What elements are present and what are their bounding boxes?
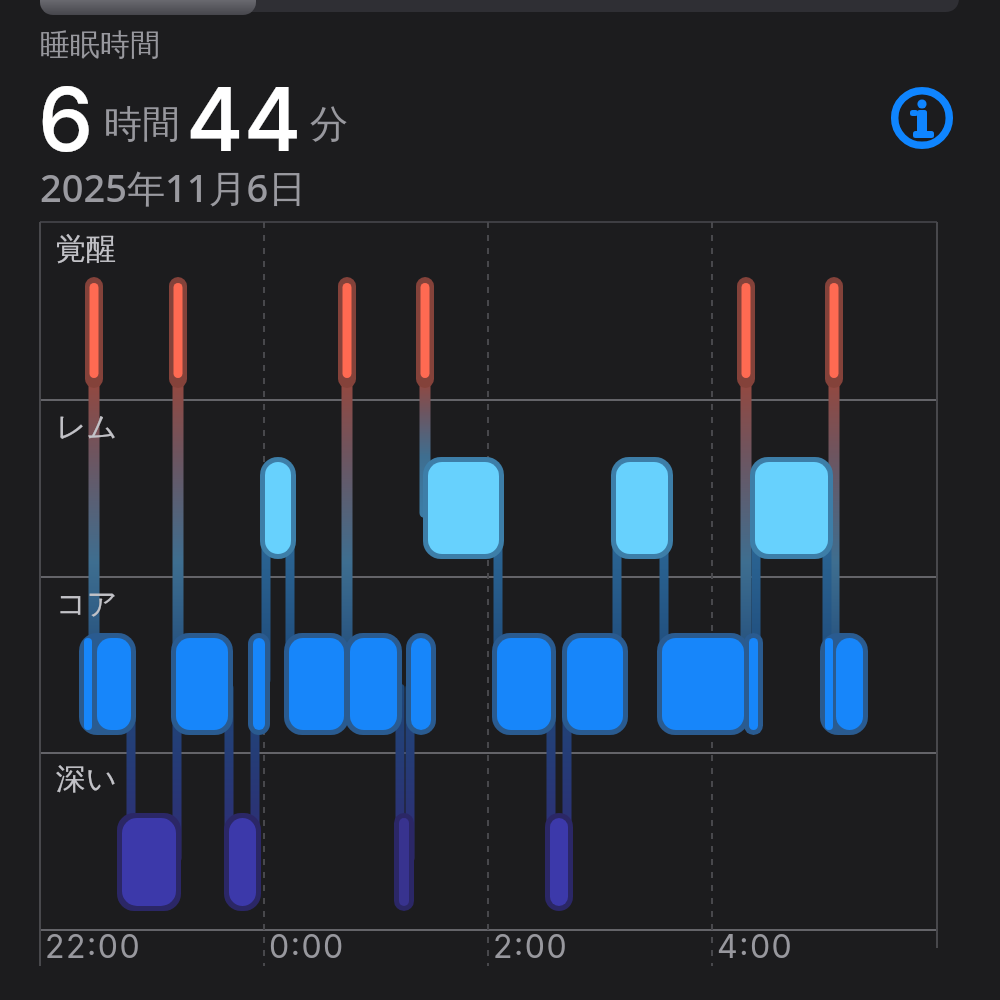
button[interactable] (40, 0, 256, 15)
staticText: 時間 (104, 100, 180, 148)
staticText: 深い (56, 760, 117, 798)
staticText: コア (56, 585, 118, 623)
staticText: 4:00 (717, 927, 794, 966)
staticText: 44 (186, 66, 302, 172)
staticText: レム (56, 408, 118, 446)
staticText: 睡眠時間 (40, 26, 160, 64)
staticText: 覚醒 (56, 230, 116, 268)
staticText: 分 (310, 100, 348, 148)
staticText: 22:00 (45, 927, 142, 966)
staticText: 0:00 (269, 927, 345, 966)
staticText: 6 (38, 66, 94, 172)
button[interactable] (892, 88, 952, 148)
staticText: 2025年11月6日 (40, 161, 307, 213)
staticText: 2:00 (493, 927, 569, 966)
